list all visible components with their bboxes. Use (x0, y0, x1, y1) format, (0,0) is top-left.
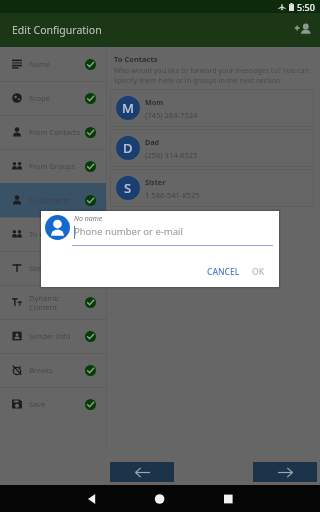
button[interactable]: Back (110, 462, 174, 482)
button[interactable]: Recents (218, 489, 238, 509)
staticText: 5:50 (297, 1, 315, 13)
button[interactable]: Back (80, 489, 100, 509)
button[interactable]: To Contacts (0, 183, 106, 217)
button[interactable]: CANCEL (203, 264, 244, 280)
staticText: Sister (145, 177, 166, 187)
button[interactable]: Next (253, 462, 317, 482)
button[interactable]: Dynamic Content (0, 285, 106, 319)
staticText: CANCEL (207, 266, 240, 278)
staticText: Dad (145, 137, 160, 147)
staticText: To Groups (29, 229, 85, 239)
button[interactable]: Scope (0, 81, 106, 115)
button[interactable]: OK (248, 264, 269, 280)
staticText: From Groups (29, 161, 85, 171)
button[interactable]: Sender Info (0, 319, 106, 353)
staticText: Phone number or e-mail (74, 225, 183, 238)
staticText: M (122, 99, 134, 117)
staticText: (745) 263-7524 (145, 110, 198, 120)
staticText: Name (29, 59, 85, 69)
button[interactable]: Home (150, 489, 170, 509)
staticText: Save (29, 399, 85, 409)
staticText: S (124, 179, 132, 197)
staticText: Scope (29, 93, 85, 103)
button[interactable]: Save (0, 387, 106, 421)
staticText: No name (74, 214, 103, 224)
staticText: (256) 314-8525 (145, 150, 198, 160)
staticText: From Contacts (29, 127, 85, 137)
button[interactable]: Add contact (293, 20, 313, 40)
button[interactable]: To Groups (0, 217, 106, 251)
staticText: To Contacts (114, 54, 158, 64)
staticText: Mom (145, 97, 164, 107)
staticText: D (123, 139, 133, 157)
button[interactable]: D (110, 129, 314, 167)
staticText: Who would you like to forward your messa… (114, 65, 316, 85)
staticText: OK (252, 266, 265, 278)
button[interactable]: S (110, 169, 314, 207)
staticText: Edit Configuration (12, 23, 102, 37)
staticText: Dynamic Content (29, 293, 85, 312)
staticText: Statistics (29, 263, 85, 273)
staticText: Sender Info (29, 331, 85, 341)
button[interactable]: From Groups (0, 149, 106, 183)
staticText: Breaks (29, 365, 85, 375)
button[interactable]: M (110, 89, 314, 127)
button[interactable]: Breaks (0, 353, 106, 387)
button[interactable]: Name (0, 47, 106, 81)
button[interactable]: Statistics (0, 251, 106, 285)
button[interactable]: From Contacts (0, 115, 106, 149)
staticText: To Contacts (29, 195, 85, 205)
staticText: 1 586-541-8525 (145, 190, 200, 200)
